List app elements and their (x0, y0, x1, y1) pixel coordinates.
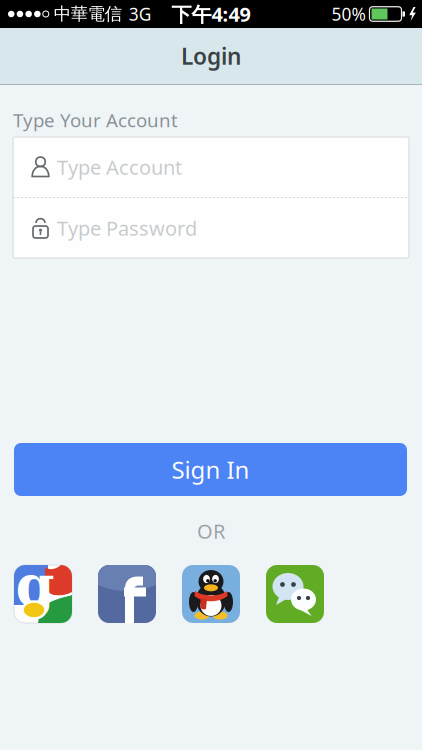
staticText: Type Your Account (13, 108, 178, 132)
button[interactable]: Sign in with Facebook (98, 565, 156, 623)
staticText: Type Account (57, 154, 182, 180)
staticText: Sign In (171, 454, 249, 485)
staticText: 3G (129, 2, 152, 25)
staticText: Login (181, 41, 241, 71)
staticText: 中華電信 (54, 3, 122, 25)
button[interactable]: Type Password (13, 198, 409, 258)
button[interactable]: Sign in with Google (14, 565, 72, 623)
staticText: 下午4:49 (171, 1, 250, 27)
staticText: OR (197, 518, 225, 544)
button[interactable]: Type Account (13, 137, 409, 197)
staticText: g (15, 553, 54, 619)
staticText: 50% (331, 2, 365, 25)
button[interactable]: Sign in with QQ (182, 565, 240, 623)
button[interactable]: Sign in with WeChat (266, 565, 324, 623)
button[interactable]: Sign In (14, 443, 407, 496)
staticText: Type Password (57, 215, 197, 241)
